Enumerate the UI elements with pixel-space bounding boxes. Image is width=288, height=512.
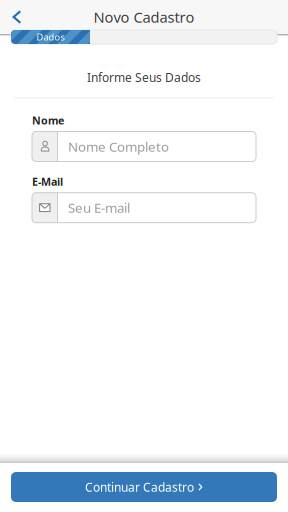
staticText: Novo Cadastro xyxy=(93,7,194,27)
button[interactable]: Nome Completo xyxy=(32,131,256,161)
staticText: Informe Seus Dados xyxy=(87,69,201,85)
staticText: Dados xyxy=(36,31,64,43)
button[interactable]: Seu E-mail xyxy=(32,193,256,223)
staticText: E-Mail xyxy=(32,174,63,189)
staticText: Continuar Cadastro xyxy=(85,479,194,495)
staticText: Nome Completo xyxy=(68,138,169,155)
staticText: Seu E-mail xyxy=(68,199,130,216)
button[interactable]: Back xyxy=(0,0,34,34)
button[interactable]: Continuar Cadastro xyxy=(0,463,288,512)
staticText: Nome xyxy=(32,113,64,127)
